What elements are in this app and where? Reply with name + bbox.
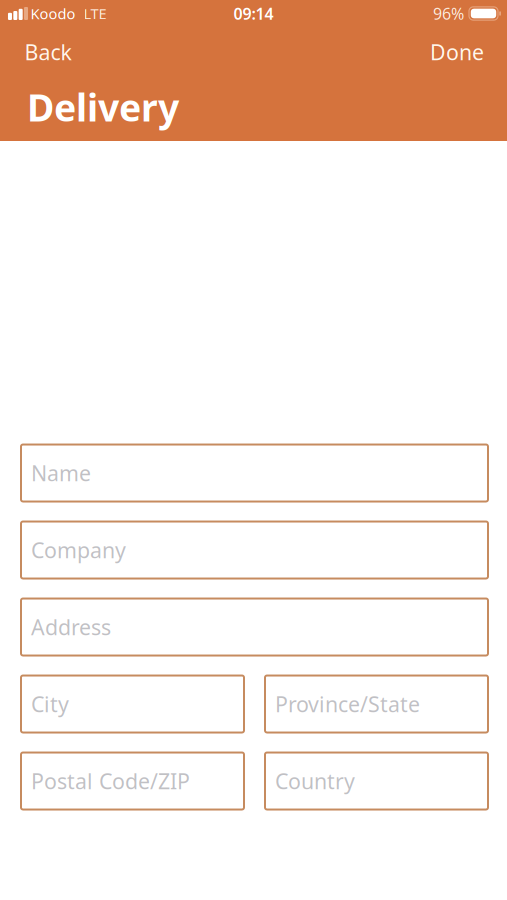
staticText: LTE bbox=[83, 4, 106, 23]
staticText: City bbox=[31, 690, 69, 718]
staticText: Koodo bbox=[30, 4, 75, 23]
staticText: Done bbox=[430, 38, 484, 66]
button[interactable]: City bbox=[21, 675, 244, 732]
staticText: Delivery bbox=[27, 82, 179, 132]
button[interactable]: Done bbox=[420, 33, 484, 71]
staticText: Address bbox=[31, 613, 111, 641]
button[interactable]: Name bbox=[21, 444, 488, 501]
staticText: Name bbox=[31, 459, 91, 487]
button[interactable]: Country bbox=[265, 752, 488, 809]
staticText: 09:14 bbox=[233, 3, 273, 24]
staticText: Country bbox=[275, 767, 355, 795]
button[interactable]: Address bbox=[21, 598, 488, 655]
staticText: Back bbox=[24, 38, 71, 66]
button[interactable]: Province/State bbox=[265, 675, 488, 732]
staticText: Company bbox=[31, 536, 126, 564]
staticText: 96% bbox=[433, 3, 464, 24]
button[interactable]: Back bbox=[24, 33, 81, 71]
button[interactable]: Company bbox=[21, 521, 488, 578]
staticText: Postal Code/ZIP bbox=[31, 767, 190, 795]
button[interactable]: Postal Code/ZIP bbox=[21, 752, 244, 809]
staticText: Province/State bbox=[275, 690, 420, 718]
